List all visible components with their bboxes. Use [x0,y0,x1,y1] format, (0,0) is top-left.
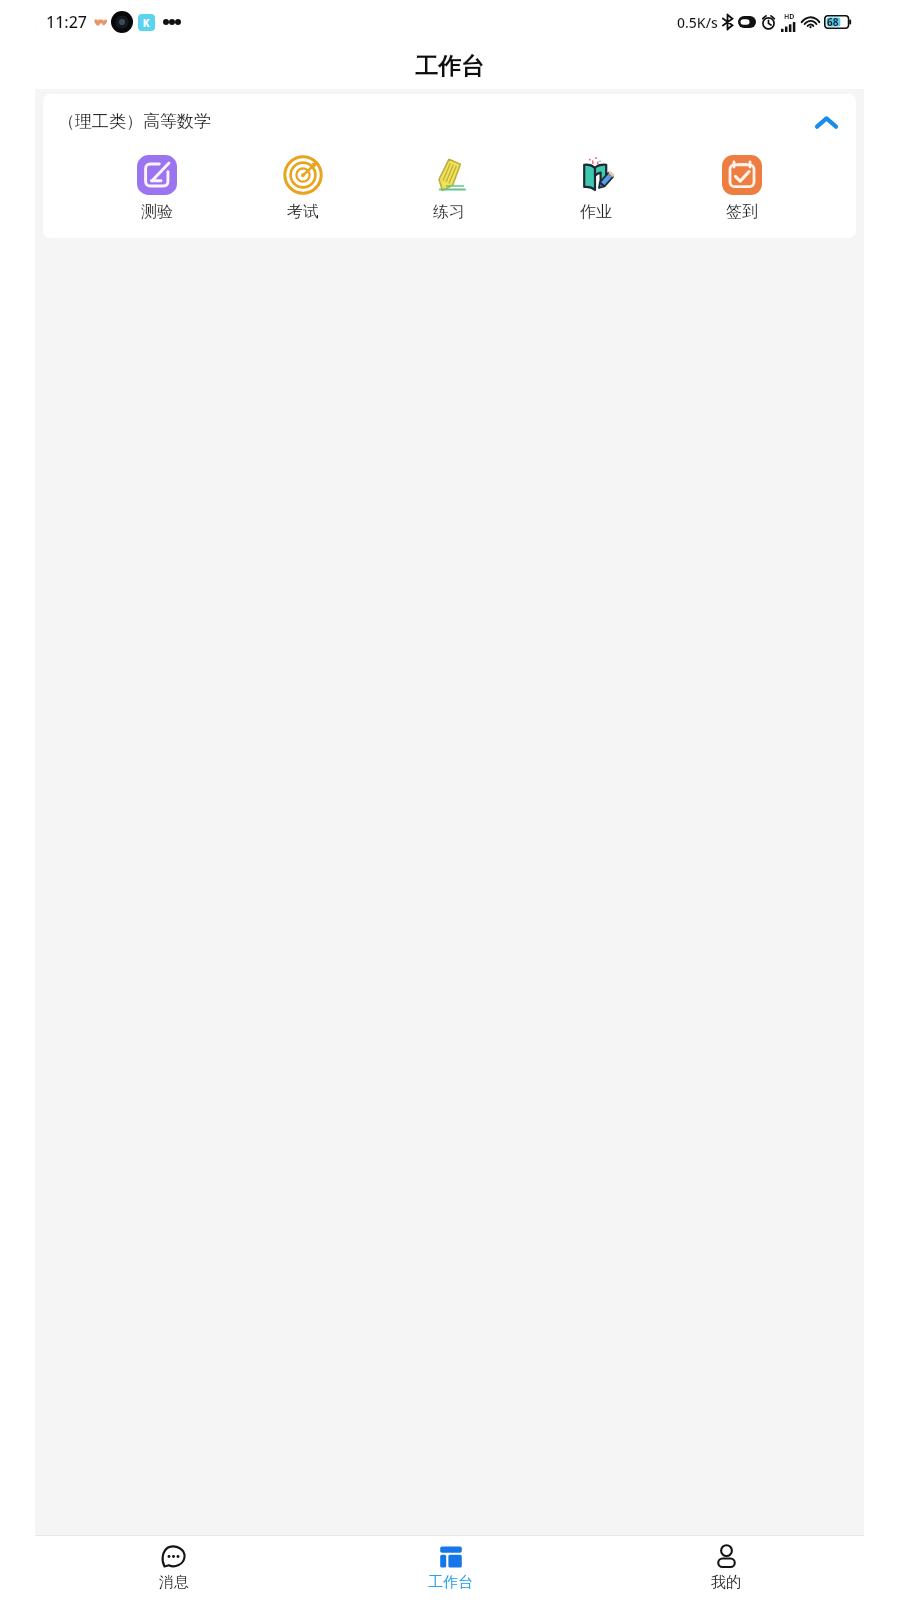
button[interactable]: 消息 [35,1536,312,1600]
staticText: （理工类）高等数学 [58,111,211,132]
button[interactable]: 作业 [564,151,628,224]
button[interactable]: 工作台 [312,1536,588,1600]
button[interactable]: 签到 [710,151,774,224]
staticText: 68 [827,15,839,29]
staticText: 11:27 [46,11,87,33]
button[interactable]: 我的 [588,1536,864,1600]
staticText: 0.5K/s [677,13,718,32]
staticText: 工作台 [428,1573,473,1592]
staticText: 我的 [711,1573,741,1592]
staticText: HD [784,12,795,22]
staticText: 工作台 [415,52,484,81]
staticText: 消息 [159,1573,189,1592]
staticText: 练习 [433,202,465,222]
button[interactable]: 练习 [417,151,481,224]
staticText: 测验 [141,202,173,222]
staticText: 考试 [287,202,319,222]
staticText: 签到 [726,202,758,222]
button[interactable]: 考试 [271,151,335,224]
staticText: K [143,16,150,30]
button[interactable]: （理工类）高等数学 [43,94,856,149]
button[interactable]: 测验 [125,151,189,224]
staticText: 作业 [580,202,612,222]
other: Collapse [811,107,841,137]
